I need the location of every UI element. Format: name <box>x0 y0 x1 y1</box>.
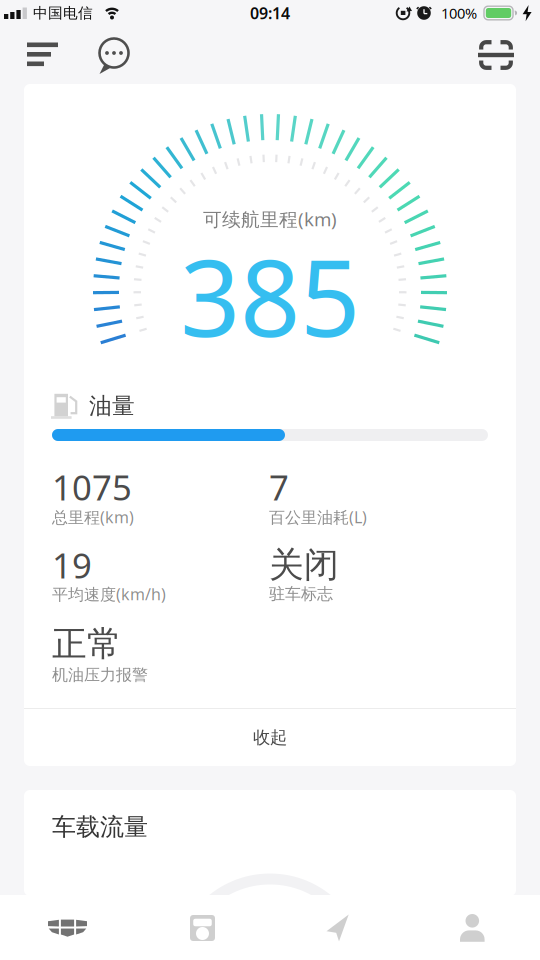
staticText: 收起 <box>253 727 287 748</box>
staticText: 100% <box>441 3 477 23</box>
button[interactable]: Scan <box>478 39 514 71</box>
button[interactable]: Profile <box>405 895 540 960</box>
button[interactable]: 收起 <box>24 709 516 766</box>
staticText: 车载流量 <box>52 812 148 842</box>
button[interactable]: Vehicle <box>0 895 135 960</box>
staticText: 关闭 <box>269 544 339 586</box>
staticText: 7 <box>269 464 289 510</box>
staticText: 可续航里程(km) <box>203 207 337 231</box>
staticText: 09:14 <box>250 2 290 24</box>
staticText: 总里程(km) <box>52 506 134 528</box>
staticText: 油量 <box>89 392 135 420</box>
staticText: 正常 <box>52 623 122 665</box>
staticText: 1075 <box>52 464 132 510</box>
staticText: 平均速度(km/h) <box>52 583 166 605</box>
staticText: 19 <box>52 542 92 588</box>
staticText: 百公里油耗(L) <box>269 506 367 528</box>
button[interactable]: Menu <box>20 36 64 72</box>
button[interactable]: Remote control <box>135 895 270 960</box>
button[interactable]: Navigation <box>270 895 405 960</box>
staticText: 385 <box>180 226 360 366</box>
staticText: 中国电信 <box>33 4 93 22</box>
button[interactable]: Messages <box>95 36 133 76</box>
staticText: 驻车标志 <box>269 584 333 604</box>
staticText: 机油压力报警 <box>52 665 148 685</box>
